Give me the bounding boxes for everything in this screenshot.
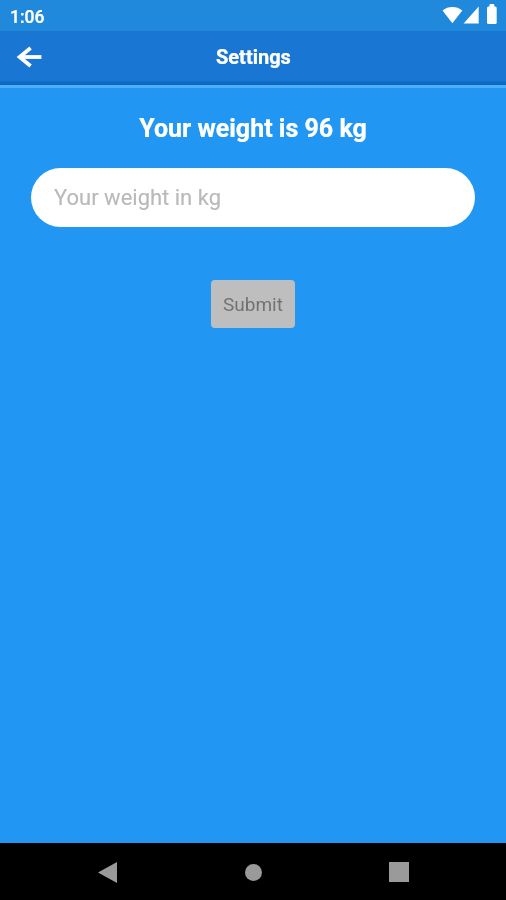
button[interactable]: Submit — [211, 280, 295, 328]
staticText: 1:06 — [10, 7, 45, 28]
staticText: Settings — [216, 45, 291, 68]
button[interactable]: Home — [225, 844, 281, 900]
button[interactable]: Your weight in kg — [31, 168, 475, 227]
button[interactable]: Recents — [371, 844, 427, 900]
button[interactable]: Back — [5, 33, 53, 81]
staticText: Submit — [223, 293, 283, 315]
staticText: Your weight is 96 kg — [0, 114, 506, 143]
staticText: Your weight in kg — [54, 185, 222, 211]
button[interactable]: Back — [79, 844, 135, 900]
